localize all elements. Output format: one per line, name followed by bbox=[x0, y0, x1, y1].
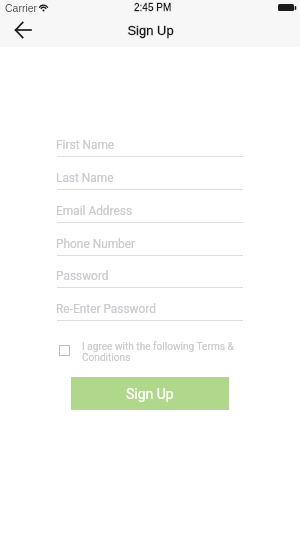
staticText: Re-Enter Password bbox=[56, 302, 156, 316]
button[interactable]: First Name bbox=[57, 131, 243, 157]
staticText: Last Name bbox=[56, 171, 114, 185]
button[interactable]: Last Name bbox=[57, 164, 243, 190]
staticText: Password bbox=[56, 269, 109, 283]
staticText: 2:45 PM bbox=[134, 2, 172, 13]
staticText: Sign Up bbox=[127, 23, 174, 38]
staticText: Sign Up bbox=[126, 386, 174, 402]
button[interactable]: Back bbox=[5, 18, 41, 42]
staticText: Phone Number bbox=[56, 237, 136, 251]
button[interactable]: Email Address bbox=[57, 197, 243, 223]
staticText: First Name bbox=[56, 138, 115, 152]
button[interactable]: I agree with the following Terms & Condi… bbox=[59, 340, 237, 366]
staticText: Email Address bbox=[56, 204, 133, 218]
staticText: Carrier bbox=[5, 2, 38, 14]
button[interactable]: Sign Up bbox=[71, 377, 229, 410]
button[interactable]: Password bbox=[57, 262, 243, 288]
button[interactable]: Re-Enter Password bbox=[57, 295, 243, 321]
staticText: I agree with the following Terms & Condi… bbox=[82, 341, 237, 364]
button[interactable]: Phone Number bbox=[57, 230, 243, 256]
